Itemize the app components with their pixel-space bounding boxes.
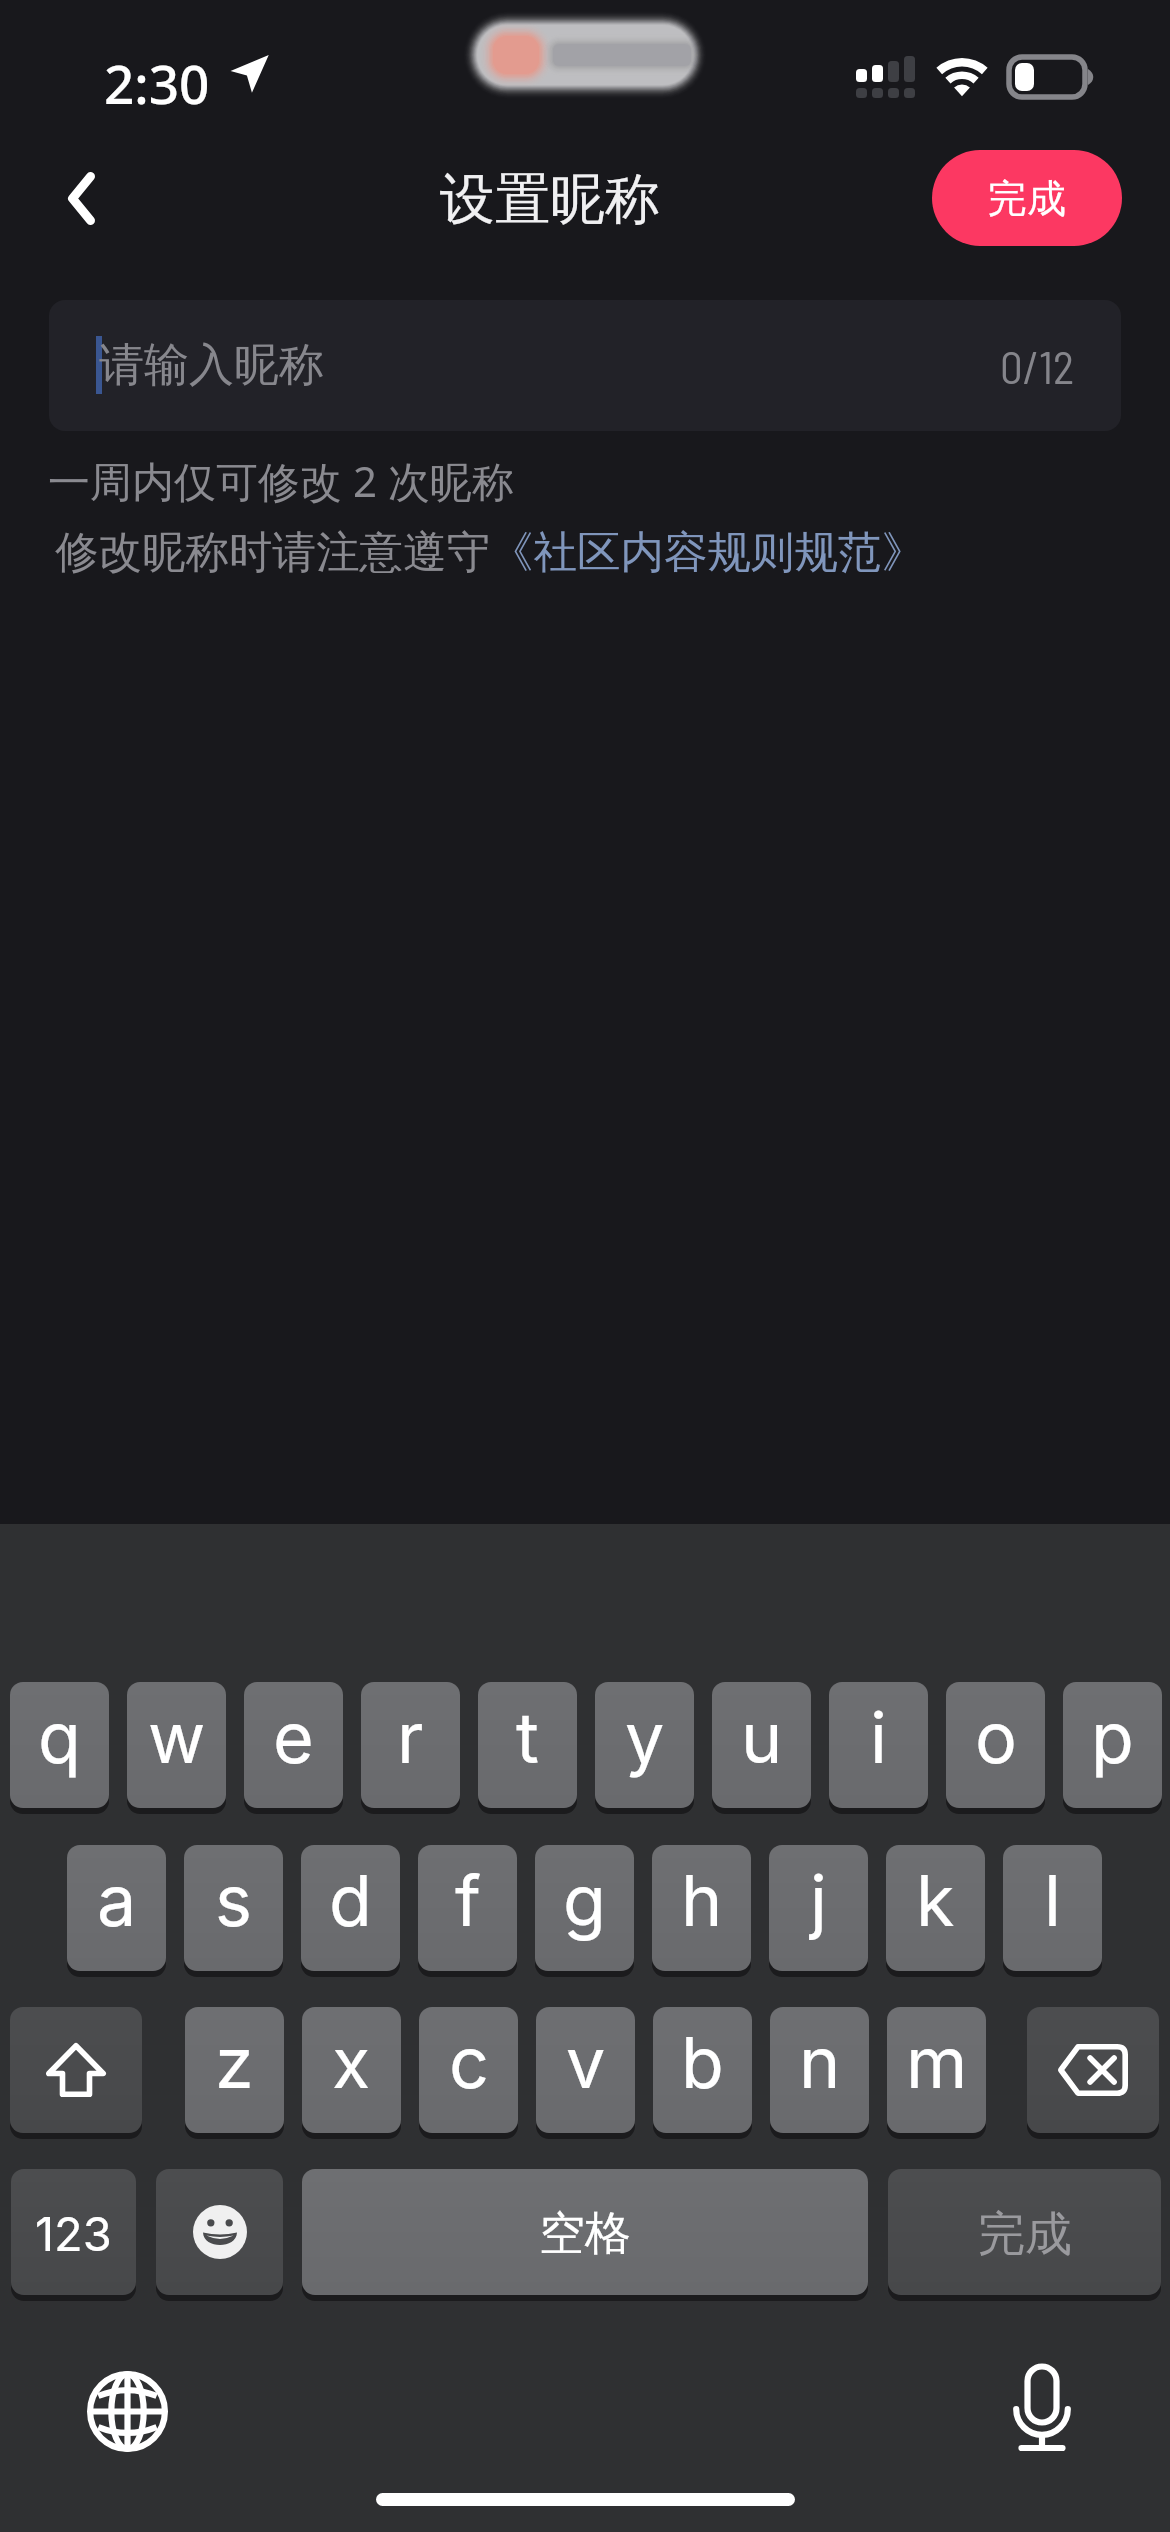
button[interactable]: g: [535, 1845, 634, 1971]
staticText: f: [455, 1858, 481, 1943]
staticText: 0/12: [1000, 339, 1074, 393]
staticText: w: [148, 1695, 206, 1780]
button[interactable]: e: [244, 1682, 343, 1808]
button[interactable]: Back: [38, 152, 128, 244]
button[interactable]: q: [10, 1682, 109, 1808]
button[interactable]: c: [419, 2007, 518, 2133]
staticText: e: [273, 1695, 314, 1780]
button[interactable]: p: [1063, 1682, 1162, 1808]
staticText: n: [799, 2020, 841, 2105]
button[interactable]: a: [67, 1845, 166, 1971]
staticText: d: [329, 1858, 372, 1943]
button[interactable]: f: [418, 1845, 517, 1971]
staticText: 123: [35, 2205, 112, 2262]
button[interactable]: m: [887, 2007, 986, 2133]
staticText: 一周内仅可修改 2 次昵称: [48, 452, 514, 509]
staticText: 请输入昵称: [99, 337, 324, 394]
staticText: 设置昵称: [440, 165, 660, 234]
staticText: l: [1044, 1858, 1061, 1943]
staticText: 2:30: [104, 47, 210, 119]
staticText: a: [97, 1858, 137, 1943]
staticText: c: [449, 2020, 489, 2105]
staticText: 完成: [988, 174, 1066, 223]
staticText: 修改昵称时请注意遵守: [55, 525, 490, 580]
button[interactable]: l: [1003, 1845, 1102, 1971]
button[interactable]: Switch keyboard: [72, 2356, 182, 2466]
button[interactable]: d: [301, 1845, 400, 1971]
staticText: m: [906, 2020, 968, 2105]
staticText: h: [681, 1858, 723, 1943]
button[interactable]: j: [769, 1845, 868, 1971]
button[interactable]: z: [185, 2007, 284, 2133]
staticText: j: [810, 1858, 827, 1943]
staticText: t: [516, 1695, 539, 1780]
staticText: s: [215, 1858, 252, 1943]
button[interactable]: s: [184, 1845, 283, 1971]
button[interactable]: o: [946, 1682, 1045, 1808]
button[interactable]: Emoji: [156, 2169, 283, 2295]
staticText: i: [870, 1695, 887, 1780]
staticText: v: [566, 2020, 606, 2105]
staticText: k: [916, 1858, 955, 1943]
button[interactable]: i: [829, 1682, 928, 1808]
button[interactable]: 完成: [888, 2169, 1161, 2295]
staticText: g: [563, 1858, 606, 1943]
staticText: p: [1091, 1695, 1134, 1780]
button[interactable]: n: [770, 2007, 869, 2133]
button[interactable]: t: [478, 1682, 577, 1808]
staticText: y: [625, 1695, 665, 1780]
button[interactable]: 请输入昵称: [49, 300, 1121, 431]
staticText: r: [397, 1695, 424, 1780]
button[interactable]: Shift: [10, 2007, 142, 2133]
staticText: 完成: [978, 2205, 1072, 2264]
staticText: 空格: [539, 2205, 631, 2263]
button[interactable]: y: [595, 1682, 694, 1808]
staticText: q: [38, 1695, 81, 1780]
button[interactable]: b: [653, 2007, 752, 2133]
staticText: b: [681, 2020, 724, 2105]
button[interactable]: h: [652, 1845, 751, 1971]
button[interactable]: Dictation: [987, 2354, 1097, 2464]
button[interactable]: 《社区内容规则规范》: [490, 525, 925, 580]
button[interactable]: u: [712, 1682, 811, 1808]
button[interactable]: 空格: [302, 2169, 868, 2295]
staticText: z: [215, 2020, 254, 2105]
button[interactable]: x: [302, 2007, 401, 2133]
button[interactable]: r: [361, 1682, 460, 1808]
staticText: o: [975, 1695, 1017, 1780]
staticText: x: [332, 2020, 371, 2105]
button[interactable]: 123: [11, 2169, 136, 2295]
button[interactable]: k: [886, 1845, 985, 1971]
button[interactable]: Backspace: [1027, 2007, 1159, 2133]
staticText: u: [741, 1695, 783, 1780]
button[interactable]: 完成: [932, 150, 1122, 246]
button[interactable]: w: [127, 1682, 226, 1808]
button[interactable]: v: [536, 2007, 635, 2133]
